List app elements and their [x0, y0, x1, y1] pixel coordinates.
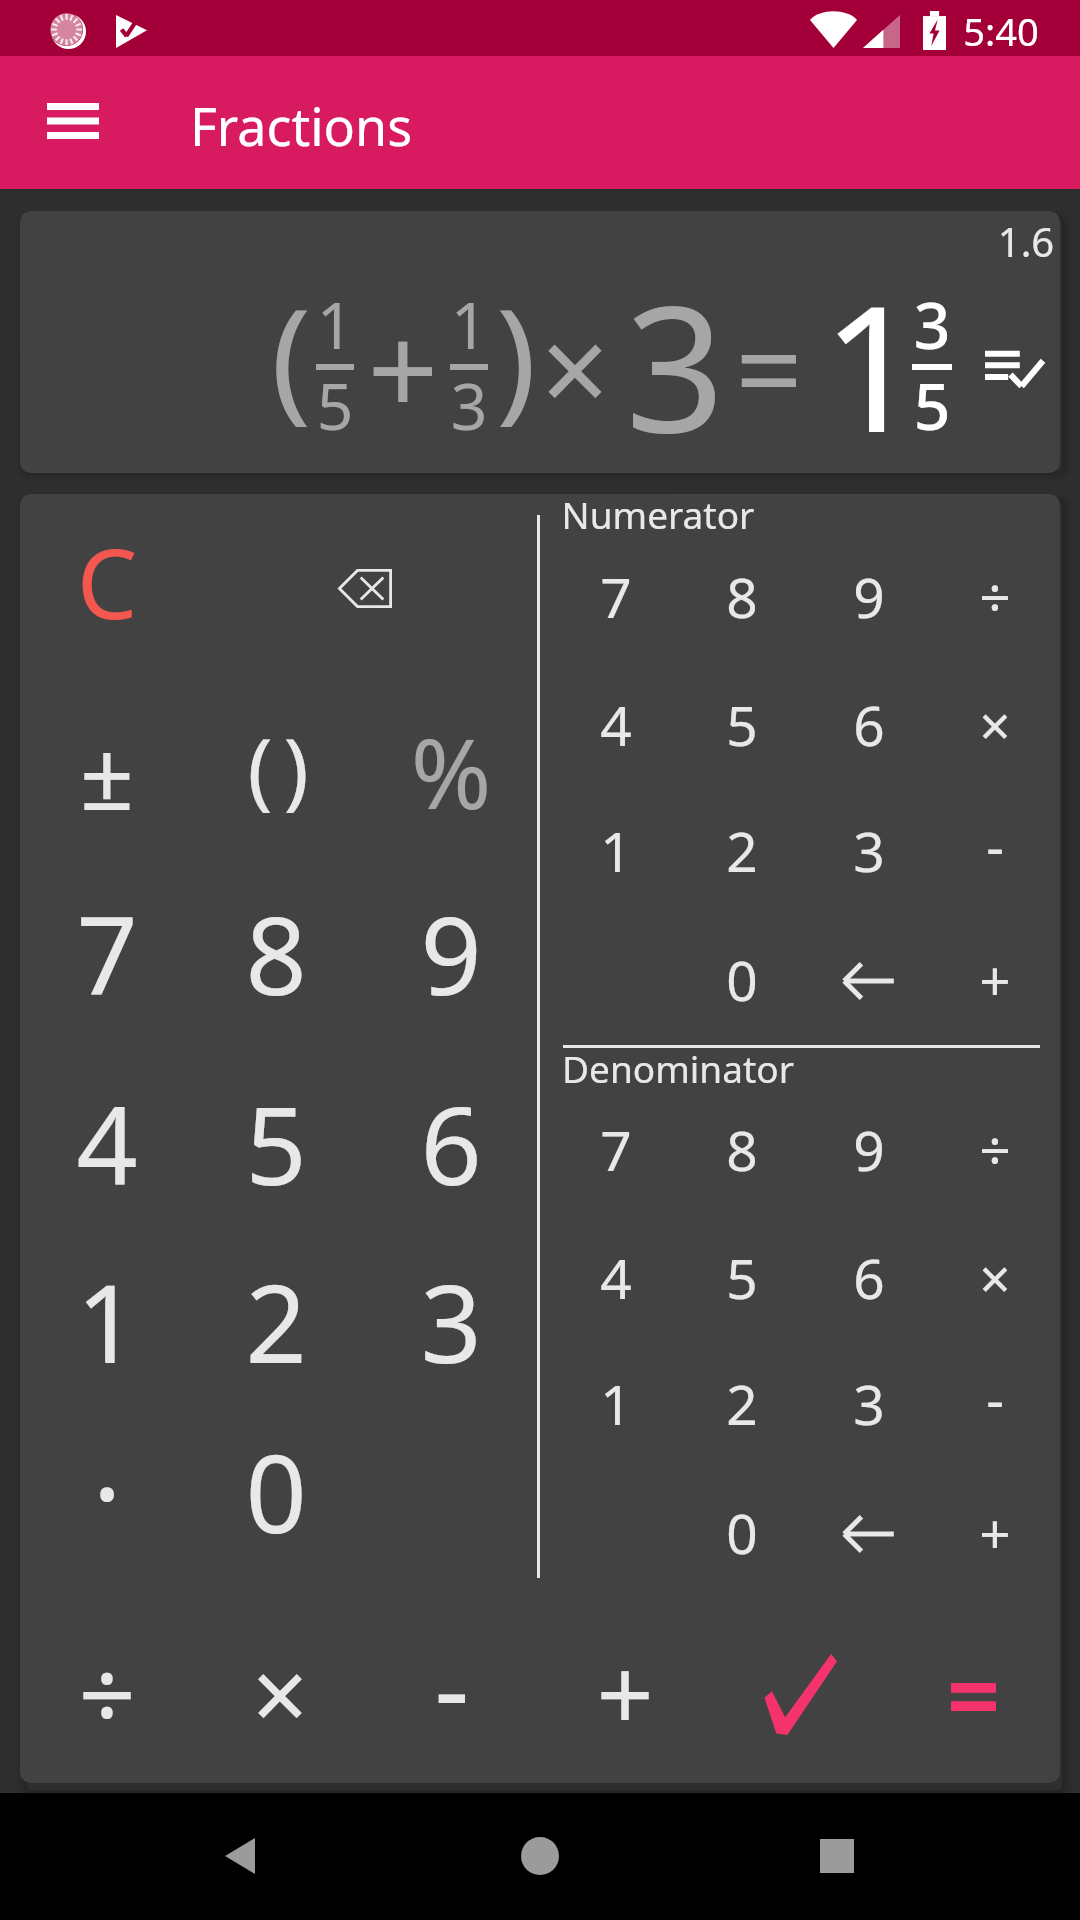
staticText: 5 — [682, 1240, 802, 1315]
button[interactable]: Open navigation menu — [33, 81, 113, 161]
button[interactable]: 2 — [201, 1250, 351, 1400]
button[interactable]: + — [935, 1474, 1055, 1594]
button[interactable]: 7 — [32, 882, 182, 1032]
staticText: ± — [32, 708, 182, 837]
button[interactable]: Apply fraction — [725, 1619, 875, 1769]
button[interactable]: 0 — [682, 1474, 802, 1594]
staticText: 5 — [201, 1071, 351, 1217]
button[interactable]: 0 — [682, 921, 802, 1041]
button[interactable]: 7 — [556, 538, 676, 658]
button[interactable]: - — [377, 1624, 527, 1774]
staticText: 5 — [296, 362, 374, 449]
button[interactable]: 9 — [809, 1091, 929, 1211]
button[interactable]: 6 — [809, 666, 929, 786]
button[interactable]: 5 — [682, 1219, 802, 1339]
staticText: × — [935, 1240, 1055, 1315]
staticText: ÷ — [935, 559, 1055, 634]
button[interactable]: 8 — [201, 882, 351, 1032]
staticText: 1 — [32, 1249, 182, 1395]
button[interactable]: Back — [195, 1811, 285, 1901]
button[interactable]: + — [935, 921, 1055, 1041]
button[interactable]: 2 — [682, 792, 802, 912]
button[interactable]: 0 — [201, 1420, 351, 1570]
button[interactable]: × — [935, 666, 1055, 786]
button[interactable]: 1 — [556, 792, 676, 912]
button[interactable]: ÷ — [32, 1621, 182, 1771]
button[interactable]: 6 — [809, 1219, 929, 1339]
staticText: 2 — [201, 1249, 351, 1395]
staticText: Denominator — [528, 1043, 828, 1093]
staticText: 6 — [376, 1071, 526, 1217]
button[interactable]: 4 — [32, 1072, 182, 1222]
staticText: × — [935, 687, 1055, 762]
staticText: 3 — [376, 1249, 526, 1395]
staticText: 7 — [32, 881, 182, 1027]
staticText: 1 — [430, 281, 508, 368]
button[interactable]: % — [376, 699, 526, 849]
button[interactable]: 3 — [809, 792, 929, 912]
button[interactable]: 3 — [376, 1250, 526, 1400]
staticText: 0 — [682, 942, 802, 1017]
staticText: C — [32, 516, 182, 647]
staticText: - — [935, 1361, 1055, 1436]
button[interactable]: × — [205, 1621, 355, 1771]
button[interactable]: Recent apps — [792, 1811, 882, 1901]
button[interactable]: 8 — [682, 1091, 802, 1211]
button[interactable]: Backspace — [809, 1474, 929, 1594]
button[interactable]: 1 — [32, 1250, 182, 1400]
staticText: 9 — [809, 559, 929, 634]
staticText: 2 — [682, 1366, 802, 1441]
button[interactable]: × — [935, 1219, 1055, 1339]
staticText: + — [363, 283, 443, 452]
button[interactable]: Home — [495, 1811, 585, 1901]
staticText: 0 — [201, 1419, 351, 1565]
staticText: 9 — [809, 1112, 929, 1187]
staticText: + — [935, 942, 1055, 1017]
button[interactable]: 9 — [809, 538, 929, 658]
button[interactable]: . — [32, 1420, 182, 1570]
button[interactable]: Backspace — [809, 921, 929, 1041]
staticText: 5 — [682, 687, 802, 762]
staticText: × — [535, 286, 615, 449]
staticText: 8 — [682, 559, 802, 634]
button[interactable]: 9 — [376, 882, 526, 1032]
button[interactable]: Parentheses — [201, 702, 351, 852]
button[interactable]: 3 — [809, 1345, 929, 1465]
staticText: 7 — [556, 559, 676, 634]
button[interactable]: 8 — [682, 538, 802, 658]
button[interactable]: 1 — [556, 1345, 676, 1465]
button[interactable]: C — [32, 509, 182, 659]
button[interactable]: - — [935, 1345, 1055, 1465]
staticText: ( — [230, 710, 290, 824]
staticText: 6 — [809, 1240, 929, 1315]
button[interactable]: ± — [32, 706, 182, 856]
staticText: 1 — [296, 281, 374, 368]
staticText: 4 — [556, 1240, 676, 1315]
button[interactable]: 5 — [201, 1072, 351, 1222]
staticText: 5 — [892, 362, 972, 449]
staticText: 3 — [430, 362, 508, 449]
button[interactable]: Show calculation steps — [984, 340, 1044, 400]
staticText: Numerator — [528, 494, 788, 539]
staticText: 4 — [556, 687, 676, 762]
staticText: 6 — [809, 687, 929, 762]
button[interactable]: ÷ — [935, 538, 1055, 658]
staticText: . — [32, 1386, 182, 1532]
staticText: + — [935, 1495, 1055, 1570]
button[interactable]: 7 — [556, 1091, 676, 1211]
button[interactable]: Backspace — [290, 513, 440, 663]
staticText: 0 — [682, 1495, 802, 1570]
staticText: 5:40 — [931, 5, 1071, 57]
button[interactable]: 6 — [376, 1072, 526, 1222]
button[interactable]: 4 — [556, 666, 676, 786]
button[interactable]: Equals — [898, 1622, 1048, 1772]
button[interactable]: 5 — [682, 666, 802, 786]
button[interactable]: 2 — [682, 1345, 802, 1465]
button[interactable]: - — [935, 792, 1055, 912]
button[interactable]: 4 — [556, 1219, 676, 1339]
staticText: 7 — [556, 1112, 676, 1187]
staticText: 2 — [682, 813, 802, 888]
button[interactable]: ÷ — [935, 1091, 1055, 1211]
staticText: = — [729, 287, 809, 448]
button[interactable]: + — [550, 1621, 700, 1771]
